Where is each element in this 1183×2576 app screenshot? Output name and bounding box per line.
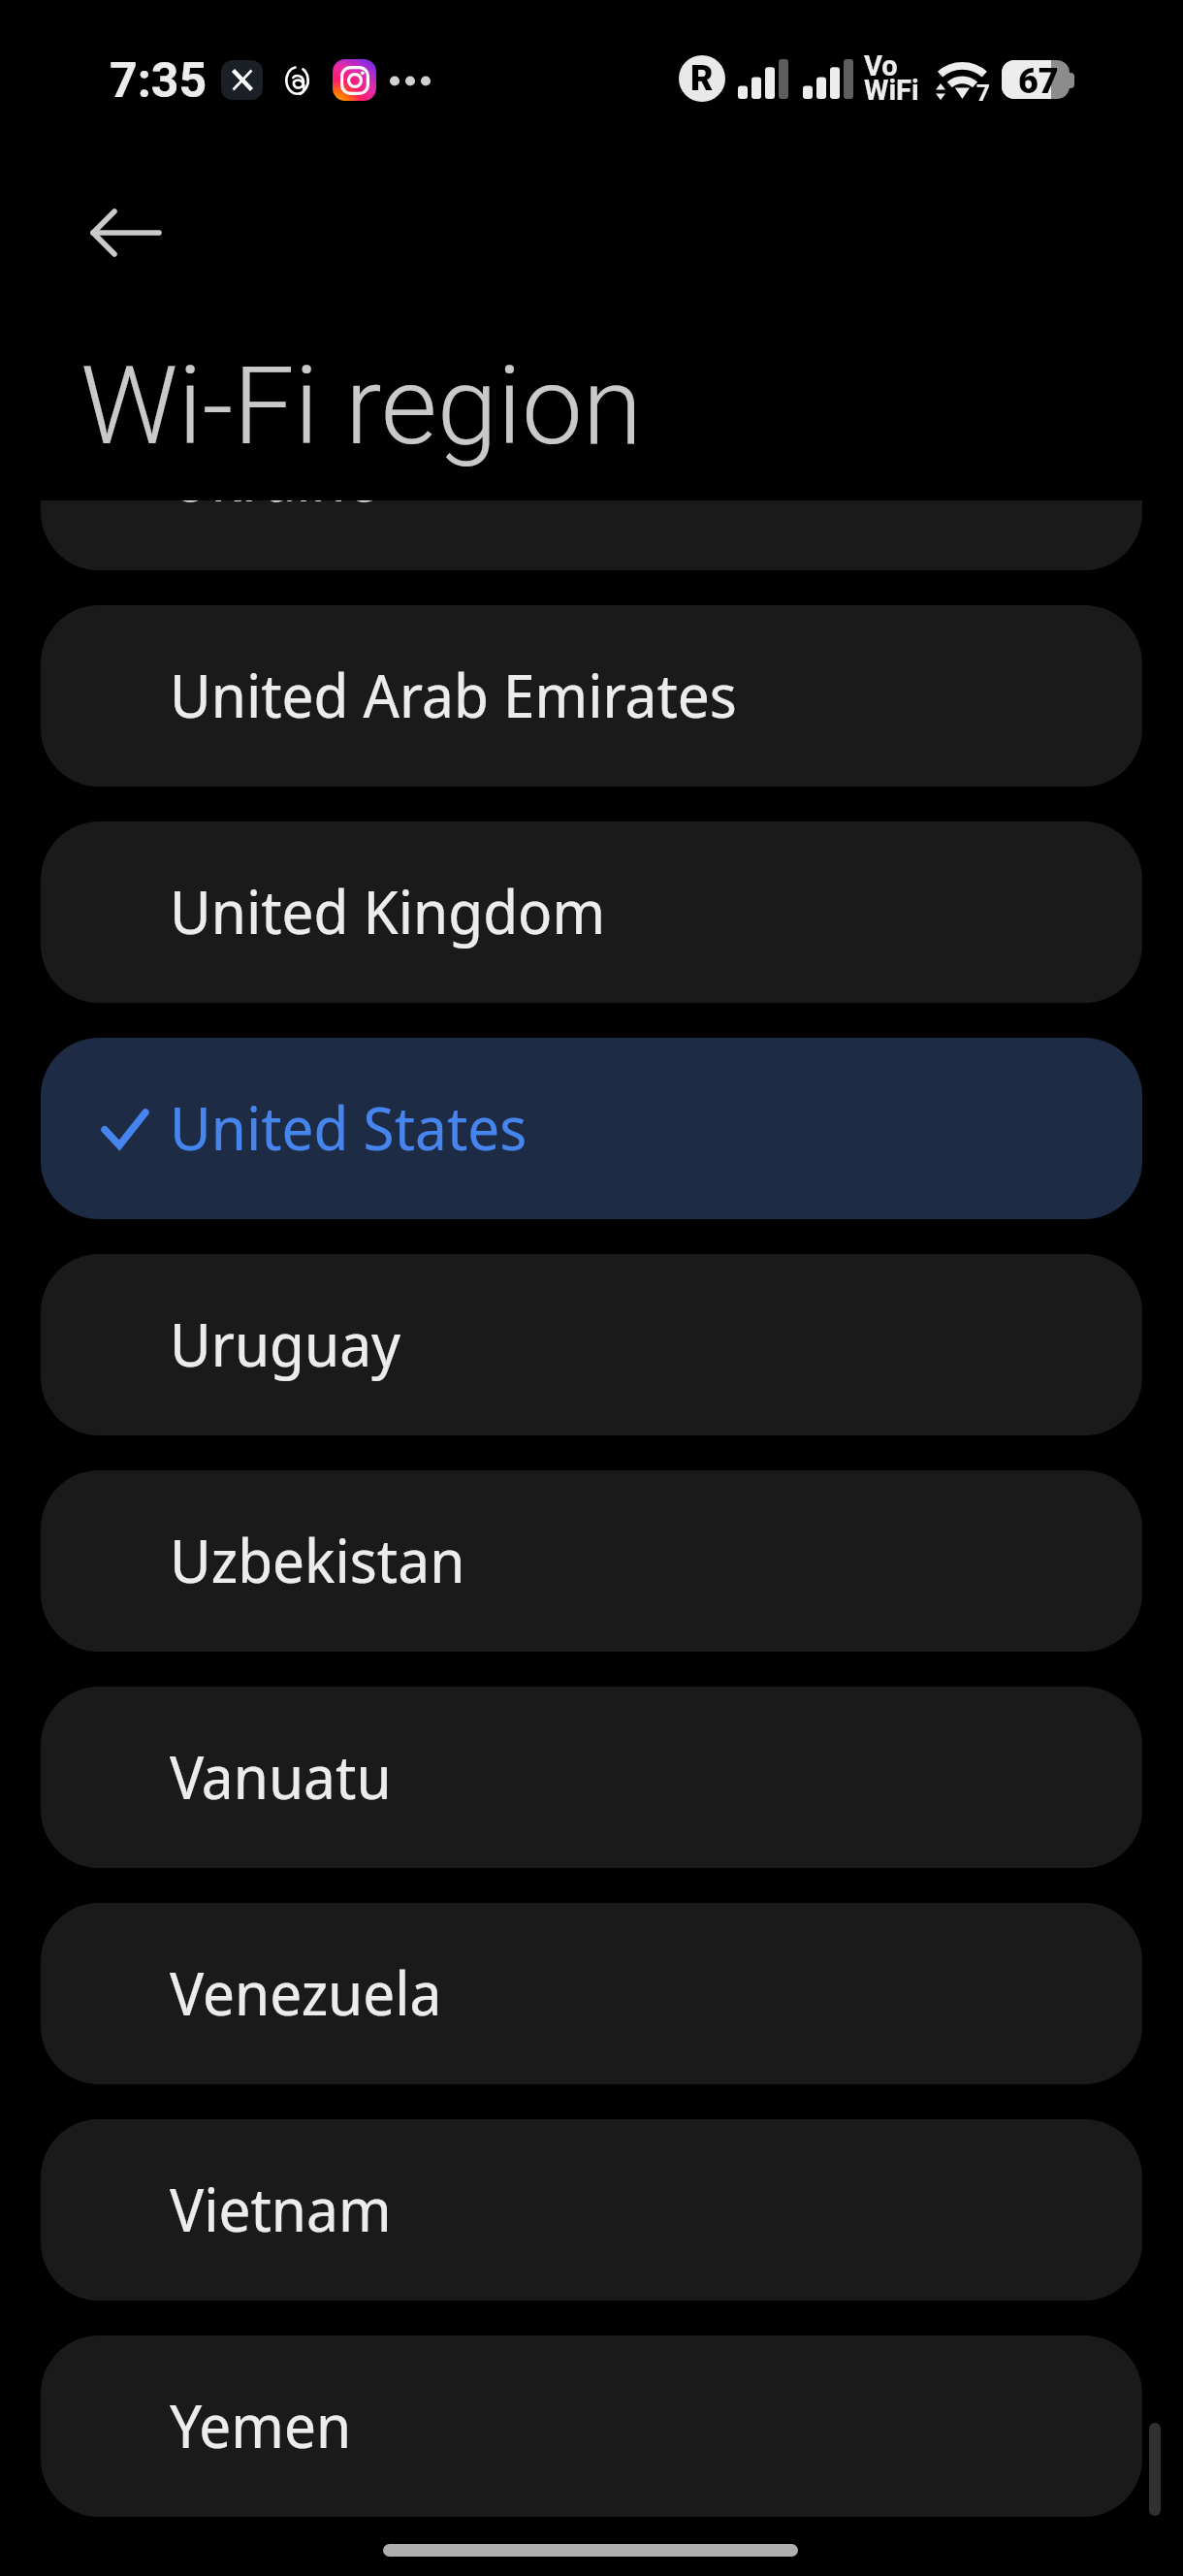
- staticText: 7: [976, 80, 990, 107]
- staticText: WiFi: [864, 74, 919, 107]
- button[interactable]: United Arab Emirates: [41, 605, 1142, 787]
- button[interactable]: Venezuela: [41, 1903, 1142, 2084]
- staticText: United Arab Emirates: [170, 654, 737, 735]
- staticText: 67: [1018, 61, 1059, 99]
- button[interactable]: Vanuatu: [41, 1687, 1142, 1868]
- staticText: United Kingdom: [170, 870, 606, 951]
- button[interactable]: Uzbekistan: [41, 1470, 1142, 1652]
- staticText: Vietnam: [170, 2168, 392, 2249]
- button[interactable]: Yemen: [41, 2335, 1142, 2517]
- staticText: Uzbekistan: [170, 1519, 465, 1600]
- button[interactable]: Back: [72, 178, 180, 287]
- button[interactable]: United Kingdom: [41, 821, 1142, 1003]
- staticText: R: [690, 58, 714, 99]
- button[interactable]: Ukraine: [41, 500, 1142, 570]
- staticText: Vanuatu: [170, 1735, 392, 1817]
- button[interactable]: Uruguay: [41, 1254, 1142, 1435]
- button[interactable]: United States: [41, 1038, 1142, 1219]
- staticText: Wi-Fi region: [80, 342, 643, 469]
- staticText: Ukraine: [170, 500, 378, 519]
- staticText: Vo: [864, 49, 898, 82]
- staticText: Venezuela: [170, 1951, 442, 2033]
- staticText: Uruguay: [170, 1303, 401, 1384]
- staticText: 7:35: [110, 52, 208, 110]
- staticText: United States: [170, 1086, 528, 1168]
- button[interactable]: Vietnam: [41, 2119, 1142, 2301]
- staticText: Yemen: [170, 2384, 352, 2465]
